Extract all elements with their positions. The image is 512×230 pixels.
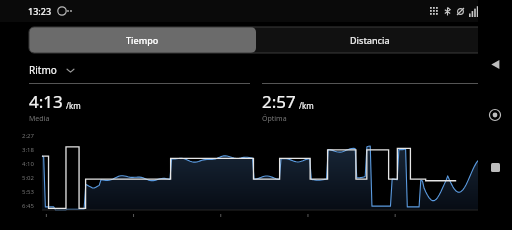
staticText: /km — [66, 100, 81, 111]
button[interactable]: 4:13 — [29, 83, 250, 124]
staticText: 4:10 — [22, 160, 34, 168]
staticText: 3:18 — [22, 146, 34, 154]
staticText: Distancia — [350, 34, 390, 46]
staticText: 6:45 — [22, 202, 34, 210]
staticText: 13:23 — [28, 5, 52, 17]
staticText: Tiempo — [126, 34, 159, 46]
staticText: Ritmo — [29, 63, 57, 77]
staticText: Media — [29, 114, 50, 124]
button[interactable]: Distancia — [256, 27, 483, 53]
button[interactable]: Home — [485, 105, 505, 125]
button[interactable]: 2:57 — [262, 83, 483, 124]
button[interactable]: Back — [485, 54, 505, 74]
staticText: Óptima — [262, 114, 287, 124]
button[interactable]: Tiempo — [29, 27, 256, 53]
staticText: 4:13 — [29, 90, 63, 113]
staticText: 2:27 — [22, 132, 34, 140]
staticText: 2:57 — [262, 90, 296, 113]
staticText: 5:53 — [22, 188, 34, 196]
staticText: /km — [299, 100, 314, 111]
staticText: 5:02 — [22, 174, 34, 182]
button[interactable]: Ritmo — [29, 63, 75, 77]
button[interactable]: Recents — [485, 157, 505, 177]
